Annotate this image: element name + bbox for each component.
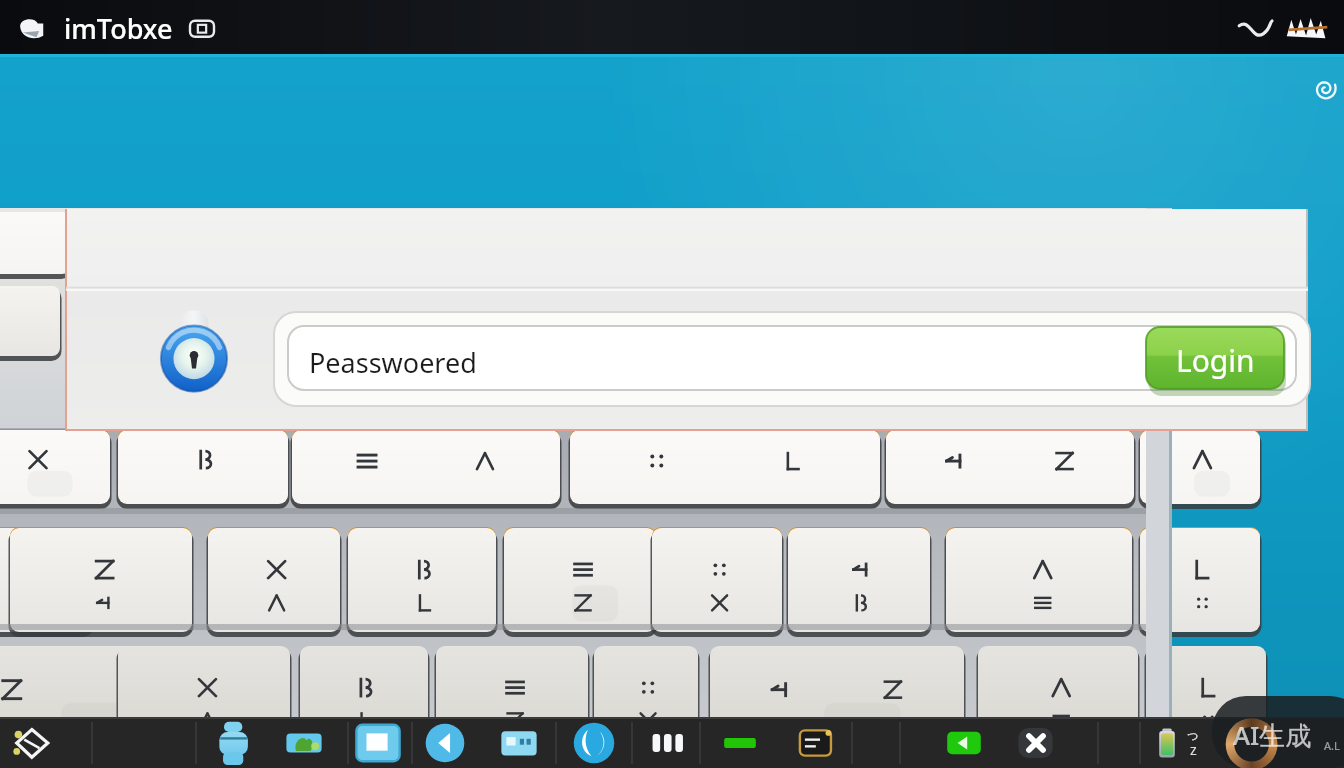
button[interactable]: Screenshot xyxy=(189,16,215,42)
staticText: A.L xyxy=(1324,738,1340,753)
button[interactable]: Window xyxy=(354,719,402,767)
button[interactable]: Files xyxy=(498,722,540,764)
button[interactable]: Browser xyxy=(572,721,616,765)
button[interactable]: Login xyxy=(1146,327,1284,393)
button[interactable]: Close xyxy=(1014,721,1058,765)
button[interactable]: Back xyxy=(424,722,466,764)
staticText: imTobxe xyxy=(64,10,173,47)
other: Wallpaper badge xyxy=(1312,76,1338,102)
button[interactable]: Terminal xyxy=(722,725,758,761)
other: Secure login xyxy=(158,309,230,389)
staticText: Peasswoered xyxy=(309,344,477,381)
staticText: Login xyxy=(1176,340,1255,381)
staticText: AI生成 xyxy=(1233,717,1312,753)
button[interactable]: Signal xyxy=(1236,9,1276,49)
button[interactable]: Notes xyxy=(794,722,836,764)
button[interactable]: Battery xyxy=(1152,728,1182,758)
staticText: Z xyxy=(1190,743,1197,758)
button[interactable]: Play xyxy=(944,723,984,763)
button[interactable]: Status xyxy=(1284,6,1330,52)
staticText: つ xyxy=(1187,729,1199,743)
button[interactable]: App icon xyxy=(14,12,48,46)
button[interactable]: Shapes xyxy=(10,722,52,764)
button[interactable]: Peasswoered xyxy=(309,310,1312,414)
button[interactable]: Assistant xyxy=(212,720,258,766)
button[interactable]: Library xyxy=(648,724,686,762)
button[interactable]: Maps xyxy=(284,723,324,763)
